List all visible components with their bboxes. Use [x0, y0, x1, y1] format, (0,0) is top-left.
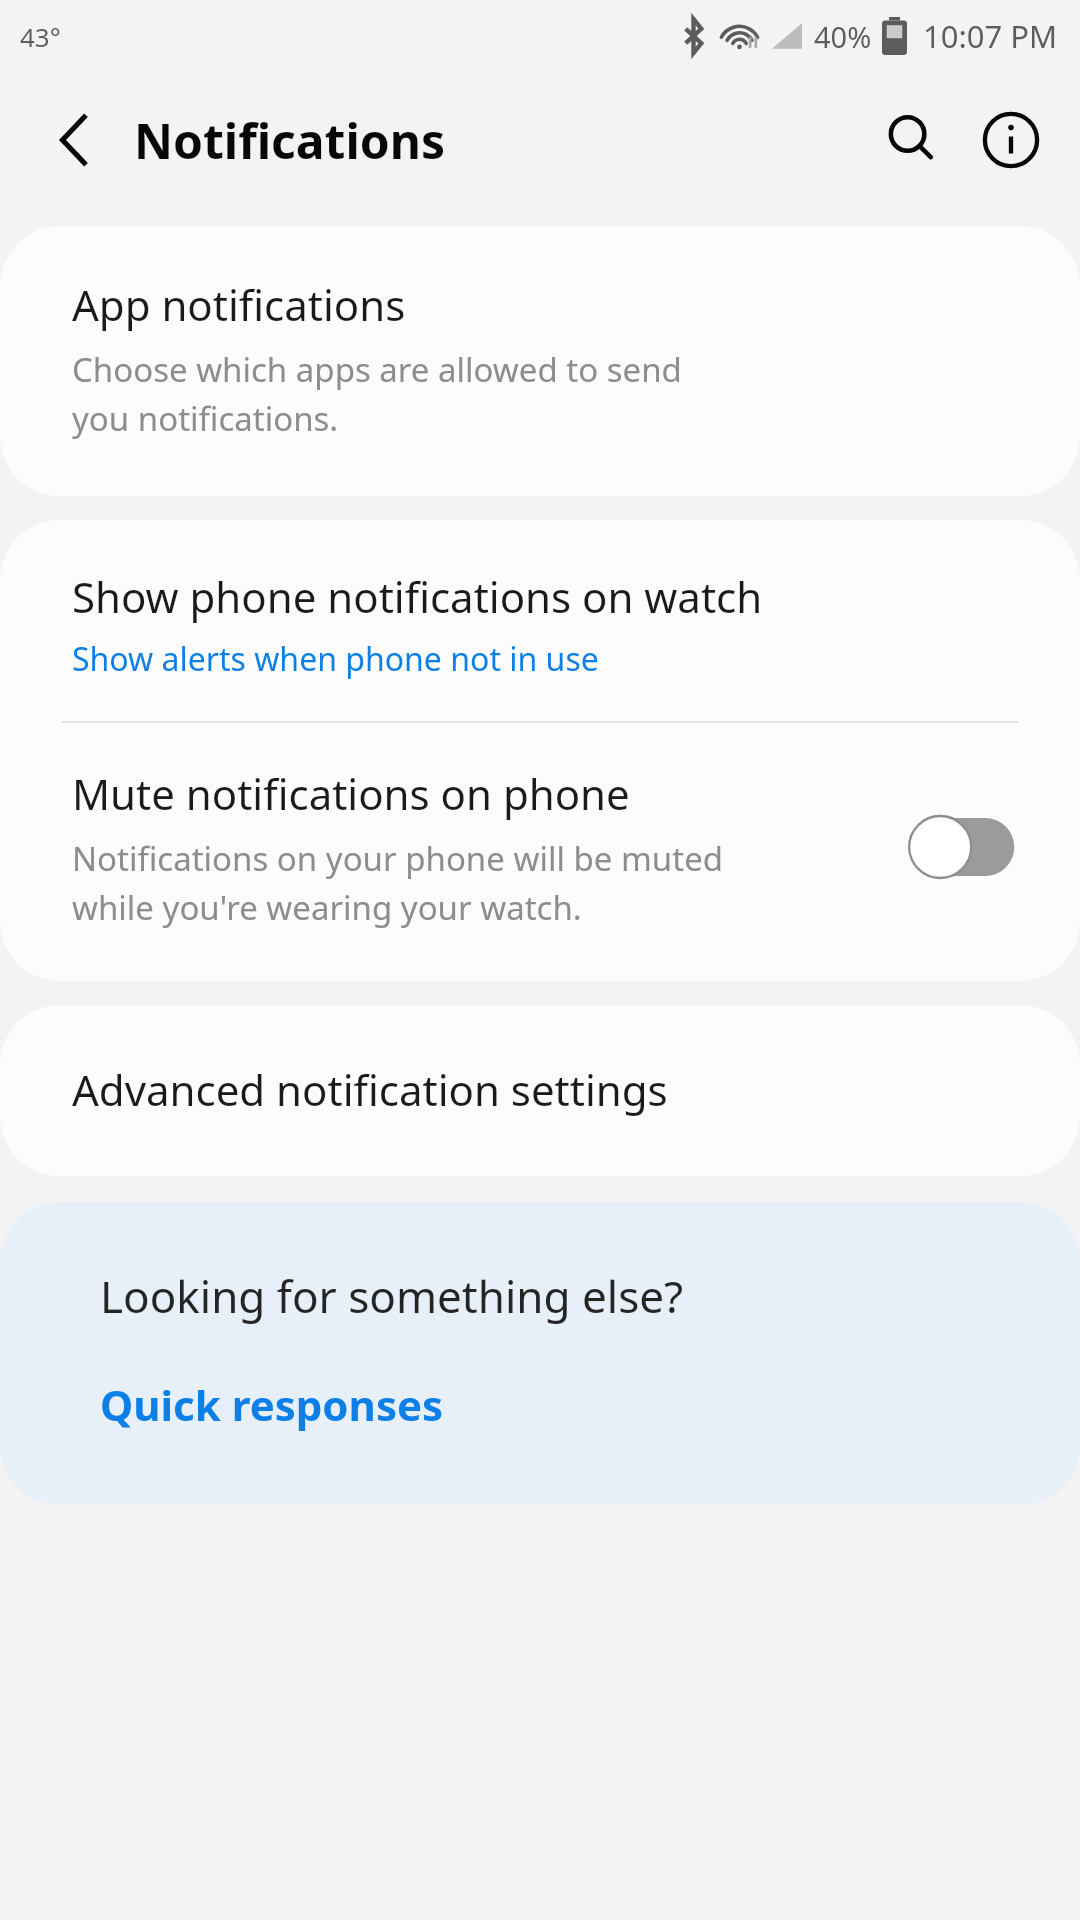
button[interactable]: Show phone notifications on watch [0, 520, 1080, 721]
button[interactable]: Mute notifications on phone [906, 814, 1020, 880]
staticText: Show alerts when phone not in use [72, 637, 599, 681]
button[interactable]: App notifications [0, 226, 1080, 496]
button[interactable]: Back [38, 104, 110, 176]
staticText: Mute notifications on phone [72, 765, 630, 822]
staticText: 40% [814, 17, 872, 56]
staticText: 10:07 PM [923, 15, 1058, 57]
staticText: Quick responses [100, 1376, 444, 1433]
staticText: App notifications [72, 276, 406, 333]
staticText: Advanced notification settings [72, 1061, 668, 1118]
button[interactable]: Search [870, 97, 956, 183]
staticText: Show phone notifications on watch [72, 568, 763, 625]
staticText: Notifications [134, 108, 446, 173]
button[interactable]: Advanced notification settings [0, 1005, 1080, 1176]
staticText: Looking for something else? [100, 1266, 684, 1326]
staticText: Notifications on your phone will be mute… [72, 836, 724, 929]
staticText: Choose which apps are allowed to send yo… [72, 347, 682, 440]
button[interactable]: Quick responses [100, 1376, 444, 1433]
staticText: 43° [20, 19, 61, 54]
button[interactable]: Information [968, 97, 1054, 183]
button[interactable]: Mute notifications on phone [0, 723, 1080, 981]
